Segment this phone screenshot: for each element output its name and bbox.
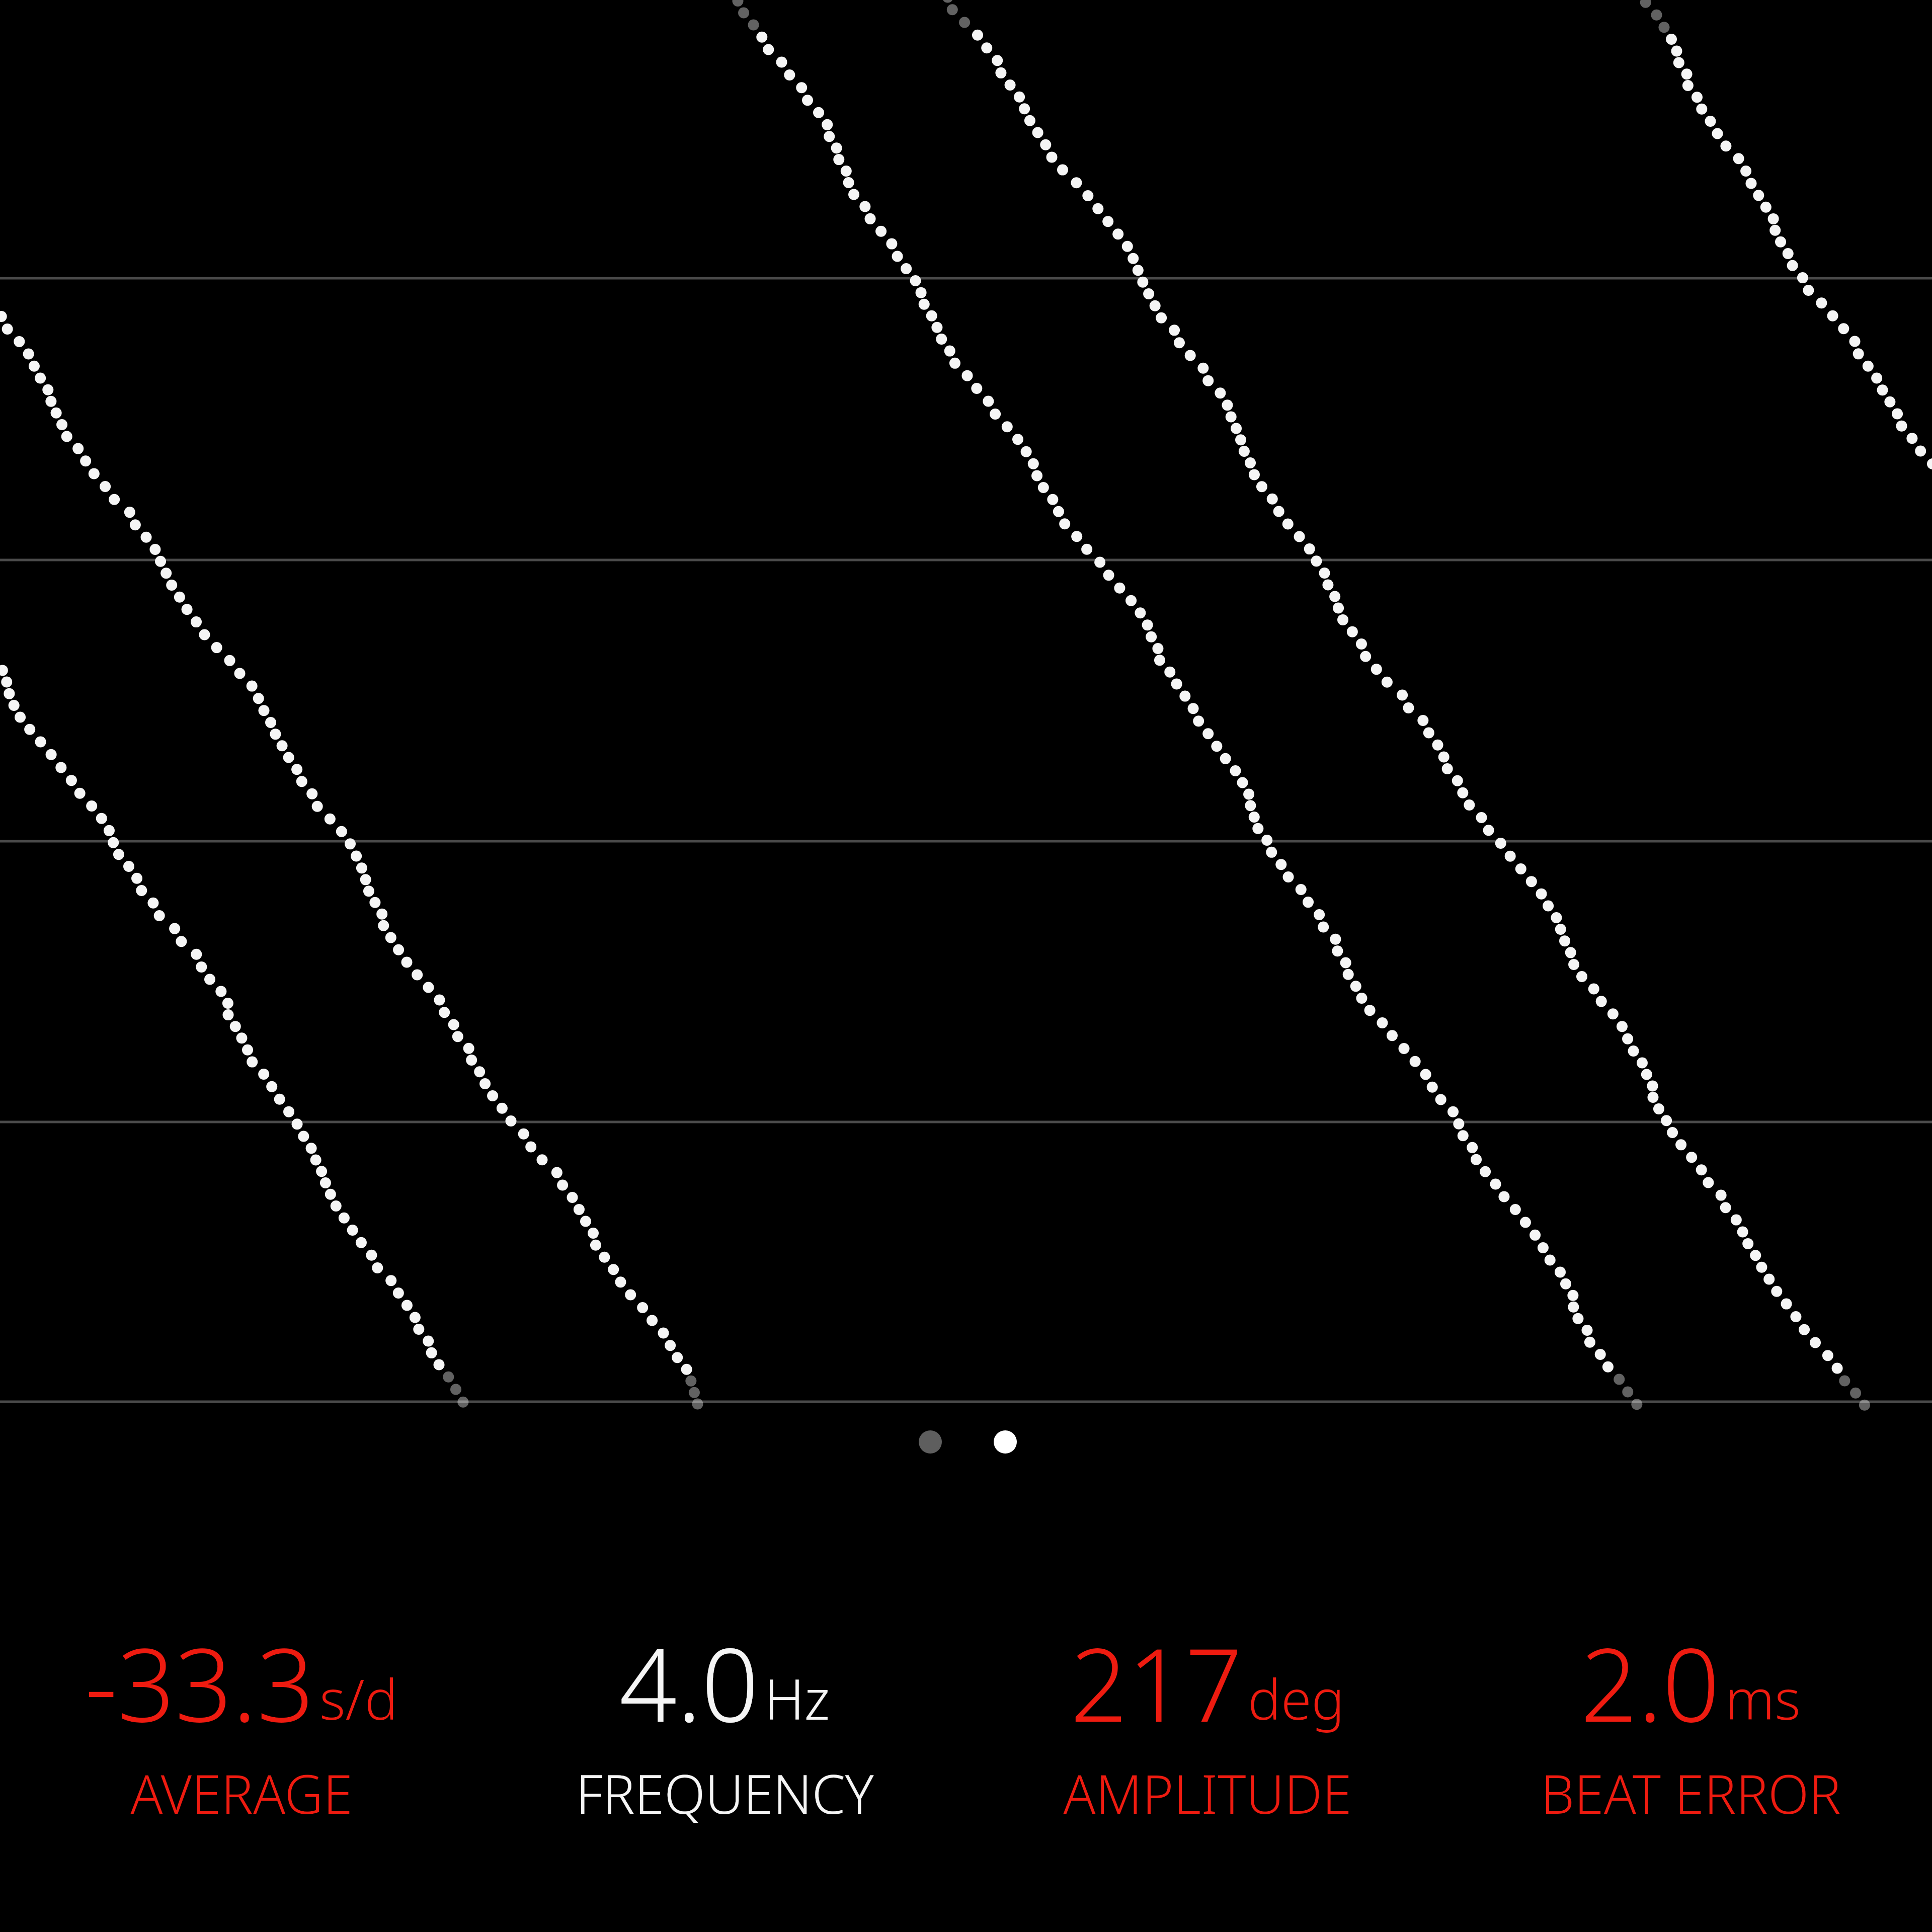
staticText: -33.3 [85, 1614, 314, 1751]
button[interactable]: 2.0 [1449, 1614, 1932, 1830]
staticText: Hz [764, 1660, 830, 1736]
button[interactable]: Timegrapher trace graph [0, 0, 1932, 1404]
button[interactable]: 4.0 [483, 1614, 966, 1830]
staticText: AMPLITUDE [1063, 1757, 1352, 1829]
staticText: s/d [319, 1660, 398, 1736]
staticText: FREQUENCY [576, 1757, 874, 1829]
staticText: ms [1725, 1660, 1801, 1736]
staticText: 2.0 [1580, 1614, 1720, 1751]
staticText: deg [1248, 1660, 1345, 1736]
staticText: 217 [1070, 1614, 1243, 1751]
button[interactable]: Page 2 of 2 [919, 1430, 1017, 1454]
button[interactable]: 217 [966, 1614, 1449, 1830]
staticText: AVERAGE [130, 1757, 353, 1829]
staticText: BEAT ERROR [1541, 1757, 1841, 1829]
staticText: 4.0 [619, 1614, 759, 1751]
button[interactable]: -33.3 [0, 1614, 483, 1830]
